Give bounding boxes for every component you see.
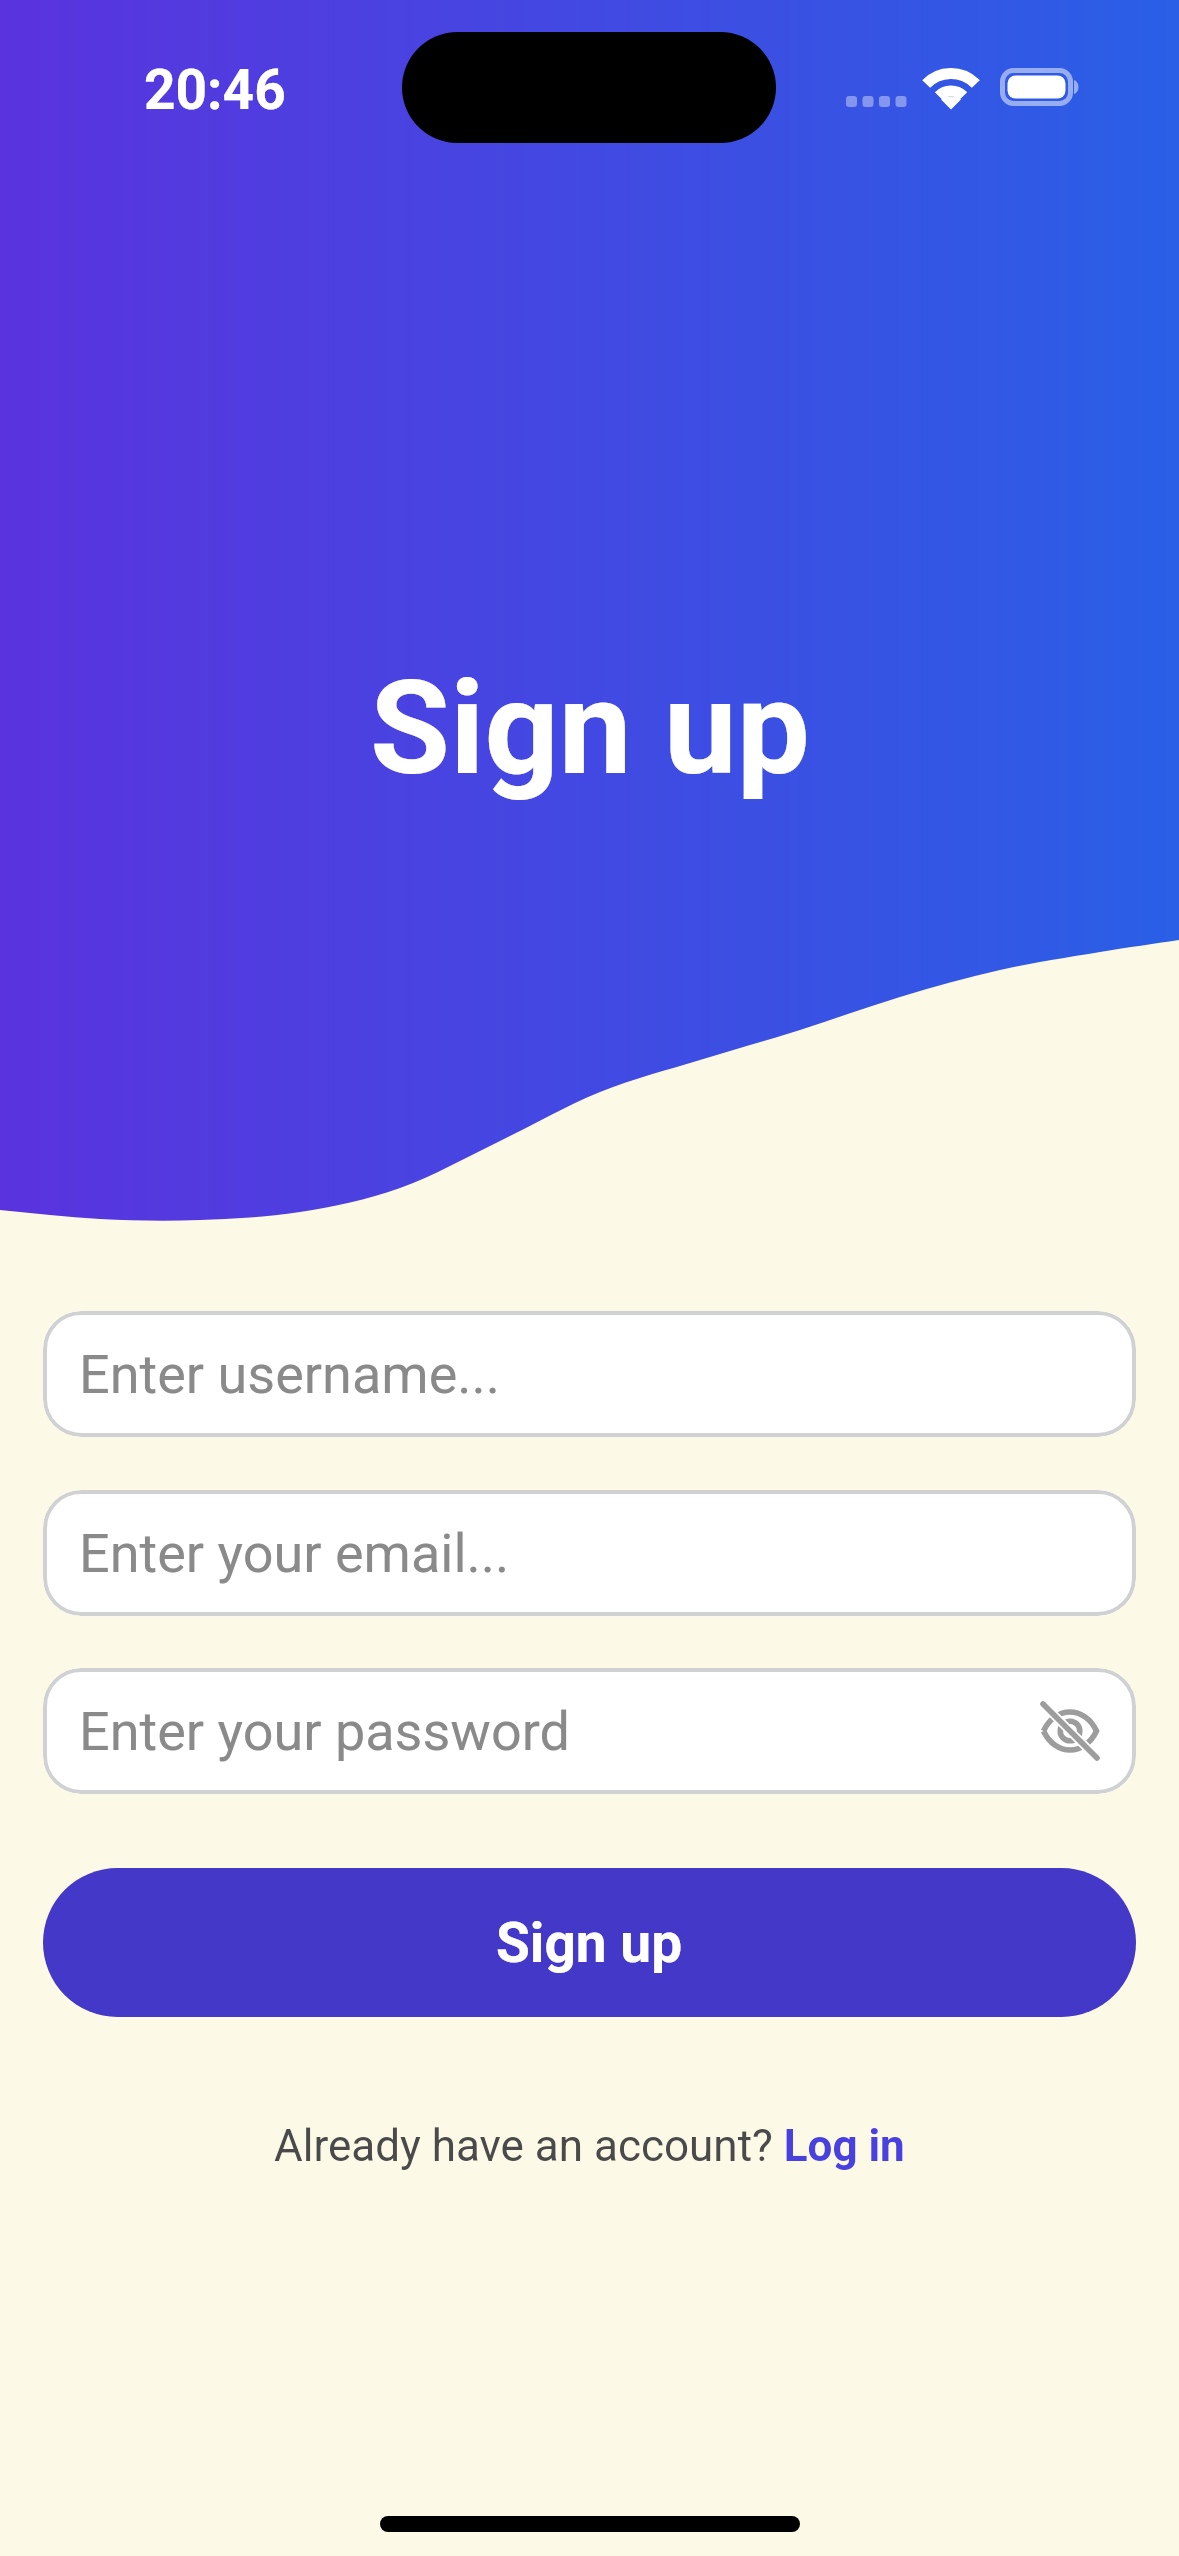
staticText: Enter your password bbox=[79, 1700, 570, 1763]
button[interactable]: Already have an account? Log in bbox=[264, 2112, 915, 2180]
staticText: Enter username... bbox=[79, 1343, 500, 1406]
button[interactable]: Show password bbox=[1037, 1698, 1103, 1764]
button[interactable]: Sign up bbox=[43, 1868, 1136, 2017]
button[interactable]: Enter username... bbox=[43, 1311, 1136, 1437]
button[interactable]: Enter your password bbox=[43, 1668, 1136, 1794]
staticText: Enter your email... bbox=[79, 1522, 510, 1585]
staticText: Sign up bbox=[370, 652, 810, 804]
staticText: Already have an account? Log in bbox=[274, 2120, 905, 2172]
staticText: Sign up bbox=[496, 1911, 683, 1975]
button[interactable]: Enter your email... bbox=[43, 1490, 1136, 1616]
staticText: 20:46 bbox=[144, 58, 286, 122]
